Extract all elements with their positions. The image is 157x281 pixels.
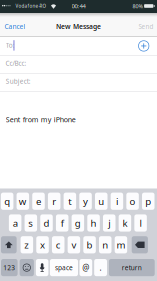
button[interactable]: i (111, 193, 123, 210)
staticText: j (108, 216, 110, 230)
button[interactable]: u (95, 193, 107, 210)
staticText: e (36, 195, 41, 208)
button[interactable]: e (32, 193, 45, 210)
staticText: g (75, 216, 81, 230)
button[interactable]: l (134, 214, 147, 232)
button[interactable]: space (50, 259, 78, 276)
button[interactable]: . (94, 259, 107, 276)
button[interactable]: f (56, 214, 68, 232)
staticText: Sent from my iPhone (6, 115, 76, 124)
button[interactable]: o (126, 193, 139, 210)
button[interactable]: q (1, 193, 13, 210)
button[interactable]: Dictate (36, 259, 48, 276)
staticText: b (87, 238, 93, 251)
button[interactable]: n (99, 236, 111, 253)
staticText: @ (82, 262, 89, 273)
button[interactable]: return (109, 259, 155, 276)
button[interactable]: @ (79, 259, 92, 276)
staticText: New Message (56, 22, 101, 31)
button[interactable]: w (17, 193, 29, 210)
button[interactable]: Send (129, 13, 155, 37)
button[interactable]: j (103, 214, 115, 232)
button[interactable]: Cancel (2, 13, 32, 37)
button[interactable]: z (21, 236, 33, 253)
button[interactable]: m (115, 236, 127, 253)
button[interactable]: g (72, 214, 84, 232)
staticText: return (122, 263, 142, 272)
button[interactable]: Add recipient (138, 40, 149, 52)
staticText: n (102, 238, 108, 251)
button[interactable]: s (25, 214, 37, 232)
staticText: Vodafone-RO (15, 3, 46, 9)
staticText: y (83, 195, 88, 208)
staticText: u (98, 195, 104, 208)
staticText: Cancel (5, 22, 26, 31)
button[interactable]: Shift (1, 236, 17, 253)
button[interactable]: 123 (1, 259, 18, 276)
staticText: c (56, 238, 61, 251)
button[interactable]: h (87, 214, 100, 232)
staticText: i (116, 195, 118, 208)
staticText: k (122, 216, 127, 230)
button[interactable]: r (48, 193, 60, 210)
staticText: p (145, 195, 151, 208)
staticText: Send (138, 22, 153, 31)
staticText: f (61, 216, 64, 230)
button[interactable]: y (79, 193, 92, 210)
staticText: Cc/Bcc: (5, 59, 26, 68)
staticText: x (40, 238, 45, 251)
staticText: v (71, 238, 76, 251)
staticText: To: (6, 41, 15, 50)
staticText: d (43, 216, 49, 230)
staticText: t (68, 195, 71, 208)
staticText: m (116, 238, 125, 251)
staticText: . (100, 262, 102, 273)
button[interactable]: Emoji (20, 259, 34, 276)
staticText: z (24, 238, 29, 251)
staticText: w (19, 195, 27, 208)
staticText: Subject: (6, 77, 31, 86)
staticText: a (13, 216, 18, 230)
button[interactable]: a (9, 214, 21, 232)
button[interactable]: Delete (132, 236, 148, 253)
button[interactable]: v (68, 236, 80, 253)
staticText: 00:44 (71, 2, 85, 10)
button[interactable]: c (52, 236, 64, 253)
staticText: 123 (3, 263, 15, 272)
staticText: h (91, 216, 97, 230)
button[interactable]: t (64, 193, 76, 210)
button[interactable]: p (142, 193, 154, 210)
staticText: o (130, 195, 136, 208)
staticText: 80% (132, 2, 142, 10)
button[interactable]: d (40, 214, 53, 232)
button[interactable]: b (83, 236, 96, 253)
staticText: s (28, 216, 33, 230)
staticText: l (140, 216, 142, 230)
button[interactable]: x (36, 236, 49, 253)
staticText: r (52, 195, 56, 208)
staticText: space (55, 263, 73, 272)
button[interactable]: k (119, 214, 131, 232)
staticText: q (4, 195, 10, 208)
